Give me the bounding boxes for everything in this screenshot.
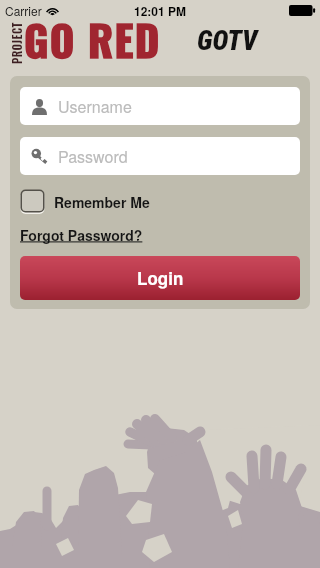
staticText: Remember Me bbox=[54, 192, 150, 212]
staticText: Password bbox=[58, 145, 128, 168]
staticText: GO RED bbox=[24, 8, 161, 64]
staticText: GOTV bbox=[197, 25, 258, 57]
staticText: PROJECT bbox=[9, 16, 25, 64]
button[interactable]: Username bbox=[20, 87, 300, 125]
staticText: Forgot Password? bbox=[20, 225, 143, 245]
button[interactable]: Remember Me bbox=[20, 189, 150, 214]
staticText: Login bbox=[137, 266, 184, 290]
staticText: 12:01 PM bbox=[134, 2, 187, 19]
button[interactable]: Login bbox=[20, 256, 300, 300]
staticText: Carrier bbox=[5, 2, 42, 19]
staticText: Username bbox=[58, 95, 132, 118]
button[interactable]: Forgot Password? bbox=[20, 225, 143, 245]
button[interactable]: Password bbox=[20, 137, 300, 175]
